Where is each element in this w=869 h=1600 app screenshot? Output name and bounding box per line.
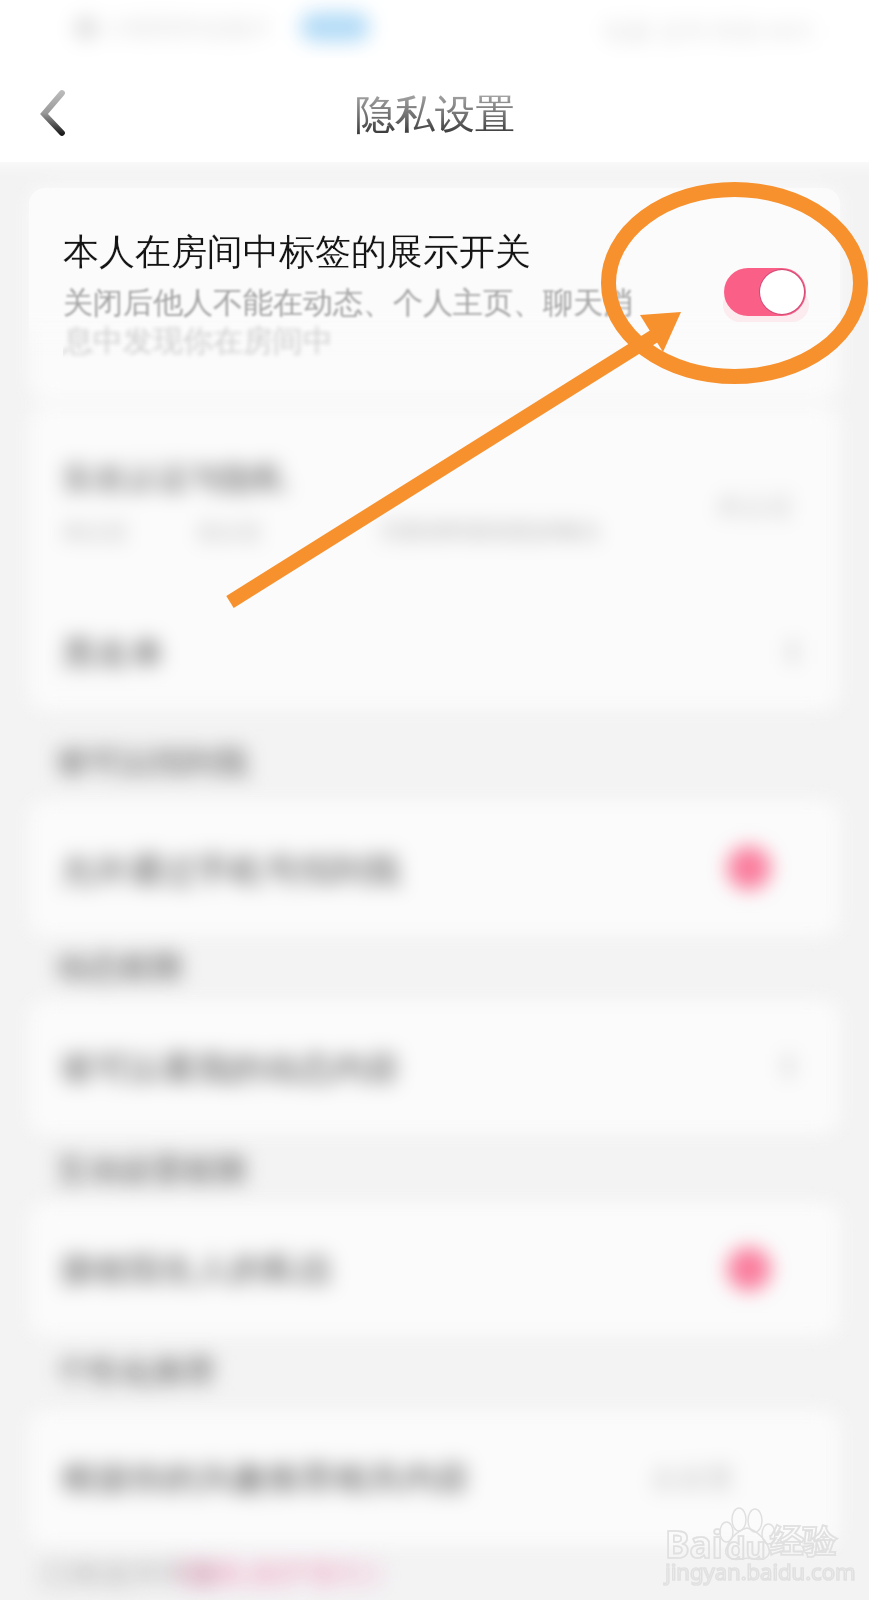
staticText: 已阅读并同意	[40, 1555, 220, 1593]
staticText: 本人在房间中标签的展示开关	[63, 229, 531, 274]
staticText: 根据你的兴趣推荐相关内容	[62, 1457, 470, 1500]
staticText: 动态权限	[56, 947, 184, 987]
staticText: Bai	[665, 1518, 723, 1568]
staticText: 允许通过手机号找到我	[60, 849, 400, 892]
staticText: 谁可以找到我	[56, 742, 248, 782]
staticText: 谁可以看我的动态内容	[60, 1047, 400, 1090]
staticText: 《隐私保护指引》	[158, 1555, 398, 1593]
staticText: 去设置	[650, 1461, 734, 1496]
staticText: 实名认证与隐私	[62, 458, 286, 498]
staticText: 黑名单	[62, 632, 164, 675]
staticText: jingyan.baidu.com	[665, 1556, 856, 1586]
staticText: 接收陌生人的私信	[60, 1248, 332, 1291]
staticText: 互动设置权限	[56, 1150, 248, 1190]
staticText: 息中发现你在房间中	[63, 322, 333, 360]
button[interactable]: Back	[20, 80, 88, 148]
staticText: 隐私设置	[355, 89, 515, 139]
staticText: 个性化推荐	[56, 1351, 216, 1391]
staticText: du	[726, 1526, 766, 1568]
staticText: 经验	[770, 1521, 836, 1563]
staticText: 完善资料获得更多曝光	[380, 518, 600, 546]
button[interactable]: 本人在房间中标签的展示开关	[29, 188, 840, 358]
button[interactable]: Toggle display switch	[724, 268, 806, 316]
staticText: 关闭后他人不能在动态、个人主页、聊天消	[63, 284, 633, 322]
